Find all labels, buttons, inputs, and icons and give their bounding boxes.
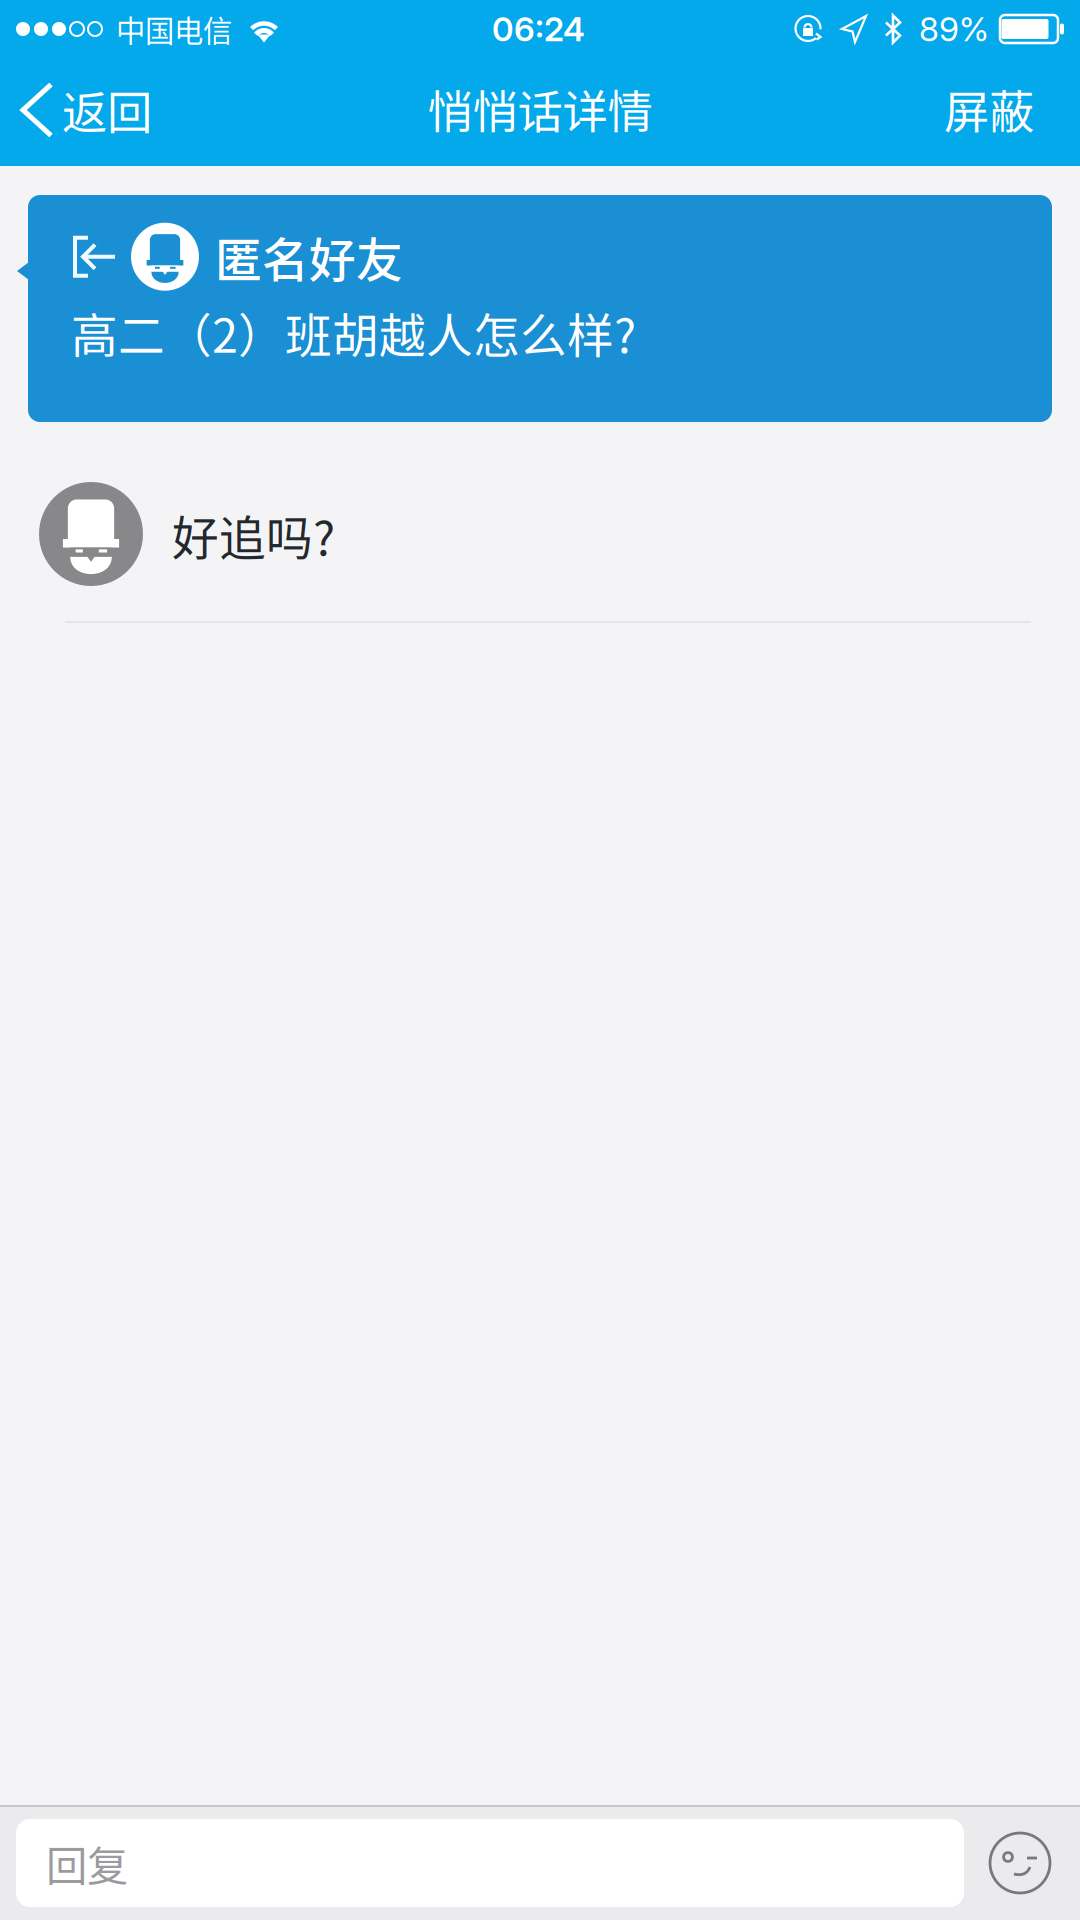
staticText: 屏蔽 bbox=[944, 76, 1034, 142]
staticText: 06:24 bbox=[492, 9, 585, 49]
button[interactable]: 返回 bbox=[0, 58, 172, 166]
button[interactable]: 匿名好友 bbox=[28, 195, 1052, 422]
staticText: 高二（2）班胡越人怎么样? bbox=[71, 299, 636, 366]
button[interactable]: 表情 bbox=[975, 1819, 1065, 1907]
button[interactable]: 好追吗? bbox=[0, 460, 1080, 623]
button[interactable]: 回复 bbox=[16, 1819, 964, 1907]
staticText: 返回 bbox=[62, 77, 152, 143]
staticText: 匿名好友 bbox=[215, 223, 403, 290]
staticText: 好追吗? bbox=[172, 501, 335, 569]
staticText: 89% bbox=[919, 9, 989, 49]
staticText: 中国电信 bbox=[116, 8, 232, 50]
staticText: 回复 bbox=[46, 1833, 128, 1893]
staticText: 悄悄话详情 bbox=[427, 76, 652, 142]
button[interactable]: 屏蔽 bbox=[920, 58, 1080, 166]
